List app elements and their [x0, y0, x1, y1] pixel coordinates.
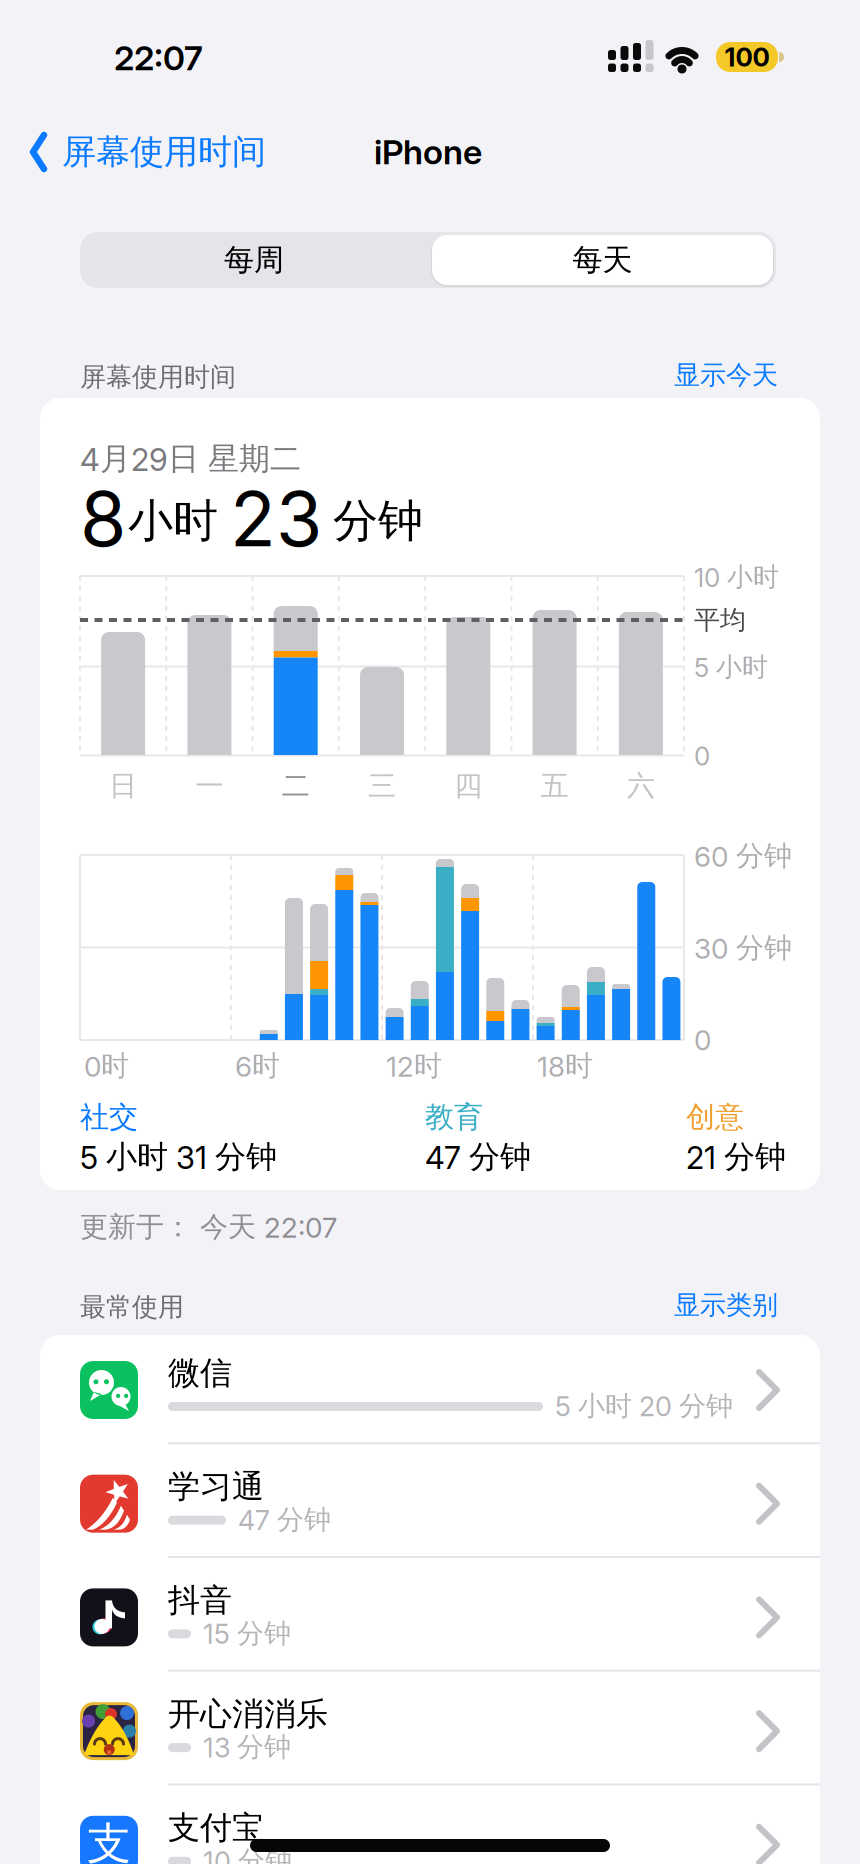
- staticText: 22:07: [114, 38, 203, 78]
- staticText: 5 小时: [694, 651, 768, 683]
- staticText: 屏幕使用时间: [80, 361, 236, 393]
- staticText: 30 分钟: [694, 931, 792, 965]
- staticText: 每天: [572, 242, 632, 278]
- staticText: 屏幕使用时间: [62, 131, 266, 173]
- staticText: 最常使用: [80, 1291, 184, 1323]
- staticText: 三: [368, 769, 396, 803]
- staticText: 分钟: [333, 493, 423, 549]
- staticText: 小时: [128, 493, 218, 549]
- staticText: 二: [282, 769, 310, 803]
- staticText: 社交: [80, 1099, 138, 1135]
- staticText: 10 分钟: [203, 1844, 292, 1864]
- staticText: 创意: [686, 1099, 744, 1135]
- staticText: 23: [230, 475, 322, 563]
- staticText: 15 分钟: [203, 1617, 291, 1650]
- staticText: 0时: [84, 1049, 129, 1083]
- staticText: 开心消消乐: [168, 1694, 328, 1734]
- staticText: 47 分钟: [425, 1138, 531, 1176]
- staticText: 微信: [168, 1353, 232, 1393]
- button[interactable]: 学习通: [40, 1447, 820, 1560]
- staticText: 18时: [537, 1049, 593, 1083]
- staticText: 10 小时: [694, 561, 779, 593]
- staticText: 47 分钟: [238, 1503, 331, 1536]
- staticText: 显示今天: [674, 359, 778, 391]
- staticText: 支付宝: [168, 1808, 264, 1847]
- staticText: 8: [80, 475, 126, 563]
- staticText: 21 分钟: [686, 1138, 786, 1176]
- button[interactable]: 抖音: [40, 1561, 820, 1674]
- staticText: 支: [87, 1817, 131, 1864]
- button[interactable]: 开心消消乐: [40, 1675, 820, 1788]
- staticText: 4月29日 星期二: [80, 440, 301, 478]
- staticText: 6时: [235, 1049, 280, 1083]
- button[interactable]: 每周: [80, 232, 428, 288]
- button[interactable]: 显示类别: [618, 1283, 778, 1327]
- staticText: 更新于： 今天 22:07: [80, 1210, 337, 1244]
- button[interactable]: 每天: [432, 235, 773, 285]
- staticText: 显示类别: [674, 1289, 778, 1321]
- staticText: 日: [109, 769, 137, 803]
- staticText: 每周: [224, 242, 284, 278]
- button[interactable]: 微信: [40, 1333, 820, 1446]
- button[interactable]: 显示今天: [618, 353, 778, 397]
- staticText: 教育: [425, 1099, 483, 1135]
- staticText: 平均: [694, 604, 746, 636]
- staticText: 0: [694, 741, 710, 771]
- staticText: 5 小时 20 分钟: [555, 1389, 733, 1423]
- staticText: 六: [627, 769, 655, 803]
- staticText: 学习通: [168, 1467, 264, 1506]
- staticText: 四: [454, 769, 482, 803]
- staticText: 抖音: [168, 1581, 232, 1620]
- staticText: 五: [541, 769, 569, 803]
- staticText: 100: [724, 42, 769, 72]
- staticText: 60 分钟: [694, 839, 792, 873]
- button[interactable]: 返回 屏幕使用时间: [30, 130, 266, 174]
- button[interactable]: 支付宝: [40, 1788, 820, 1864]
- staticText: iPhone: [374, 132, 482, 172]
- staticText: 13 分钟: [203, 1730, 291, 1764]
- staticText: 0: [694, 1023, 711, 1056]
- staticText: 12时: [386, 1049, 442, 1083]
- staticText: 5 小时 31 分钟: [80, 1138, 277, 1176]
- staticText: 一: [195, 769, 223, 803]
